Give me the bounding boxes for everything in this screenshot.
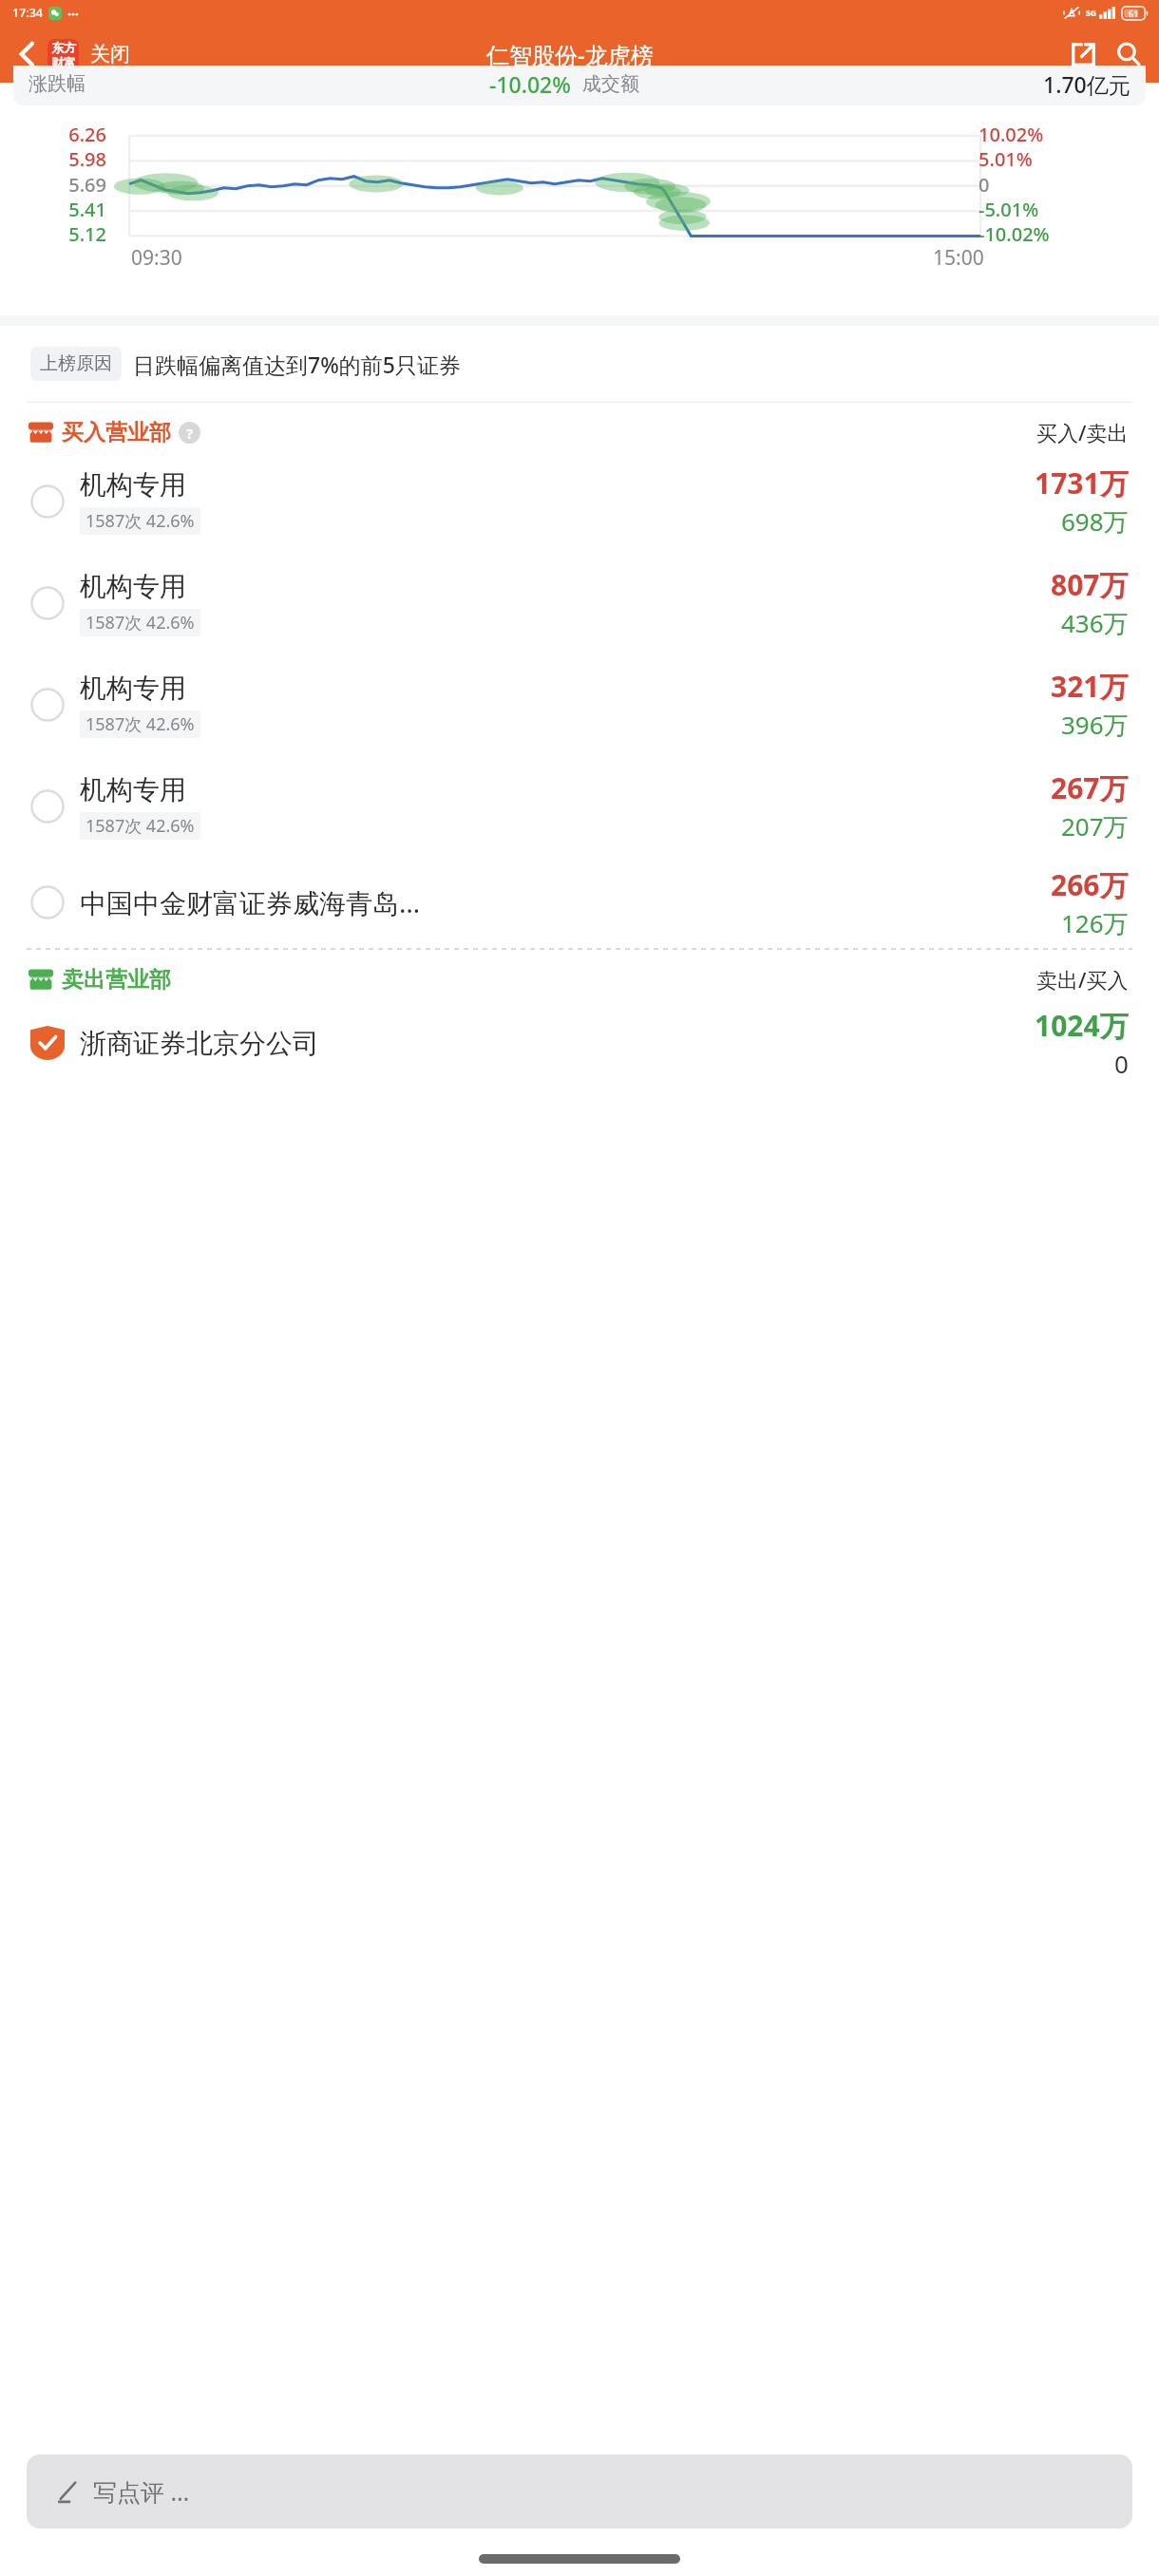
staticText: ? [186,424,194,443]
staticText: 机构专用 [80,468,186,502]
staticText: 5.69 [0,172,106,198]
staticText: 396万 [1061,708,1129,742]
staticText: 1587次 42.6% [85,509,195,533]
staticText: 机构专用 [80,570,186,603]
staticText: 09:30 [131,244,182,272]
staticText: 日跌幅偏离值达到7%的前5只证券 [133,350,461,379]
staticText: -10.02% [978,221,1159,247]
staticText: -5.01% [978,197,1159,222]
staticText: 5.41 [0,197,106,222]
staticText: 5.98 [0,146,106,172]
button[interactable]: 说明 [179,422,200,444]
staticText: 买入/卖出 [1036,418,1129,446]
staticText: 财富 [51,55,76,70]
staticText: 关闭 [90,42,130,66]
staticText: 中国中金财富证券威海青岛… [80,884,421,920]
staticText: 1731万 [1035,464,1129,502]
staticText: 0 [978,172,1159,198]
staticText: 0 [1114,1047,1129,1080]
button[interactable]: 机构专用 [0,653,1159,755]
staticText: -10.02% [489,69,571,99]
button[interactable]: 机构专用 [0,552,1159,653]
staticText: 61 [1129,8,1139,19]
staticText: 1587次 42.6% [85,611,195,635]
button[interactable]: 中国中金财富证券威海青岛… [0,857,1159,948]
staticText: 上榜原因 [40,352,112,375]
staticText: 126万 [1061,906,1129,940]
button[interactable]: 机构专用 [0,755,1159,857]
staticText: 东方 [51,40,76,55]
button[interactable]: 机构专用 [0,450,1159,552]
staticText: 698万 [1061,504,1129,539]
staticText: 卖出营业部 [62,966,171,994]
staticText: 15:00 [933,244,984,272]
button[interactable]: Back [6,33,47,75]
button[interactable]: 东方财富 [47,39,79,70]
staticText: 涨跌幅 [28,72,85,96]
staticText: 266万 [1051,865,1129,904]
staticText: 17:34 [12,5,44,21]
staticText: 1587次 42.6% [85,712,195,736]
staticText: 仁智股份-龙虎榜 [486,39,654,70]
staticText: 1024万 [1035,1006,1129,1045]
staticText: 5.12 [0,221,106,247]
staticText: 1587次 42.6% [85,814,195,838]
staticText: 买入营业部 [62,419,171,446]
button[interactable]: 浙商证券北京分公司 [0,997,1159,1089]
staticText: 写点评 … [93,2475,190,2508]
button[interactable]: 写点评 … [27,2454,1132,2529]
staticText: 1.70亿元 [1043,69,1130,99]
button[interactable]: 关闭 [88,36,132,72]
staticText: 436万 [1061,606,1129,640]
staticText: 5.01% [978,146,1159,172]
staticText: 807万 [1051,565,1129,604]
button[interactable]: Search [1106,31,1151,77]
staticText: 6.26 [0,122,106,147]
staticText: 浙商证券北京分公司 [80,1027,319,1060]
staticText: 卖出/买入 [1036,965,1129,994]
staticText: 机构专用 [80,672,186,705]
staticText: 5G [1086,8,1097,19]
button[interactable]: Share [1060,31,1106,77]
staticText: 成交额 [582,72,639,96]
staticText: 321万 [1051,667,1129,706]
staticText: 10.02% [978,122,1159,147]
staticText: 207万 [1061,809,1129,843]
staticText: 267万 [1051,768,1129,807]
staticText: 机构专用 [80,773,186,806]
